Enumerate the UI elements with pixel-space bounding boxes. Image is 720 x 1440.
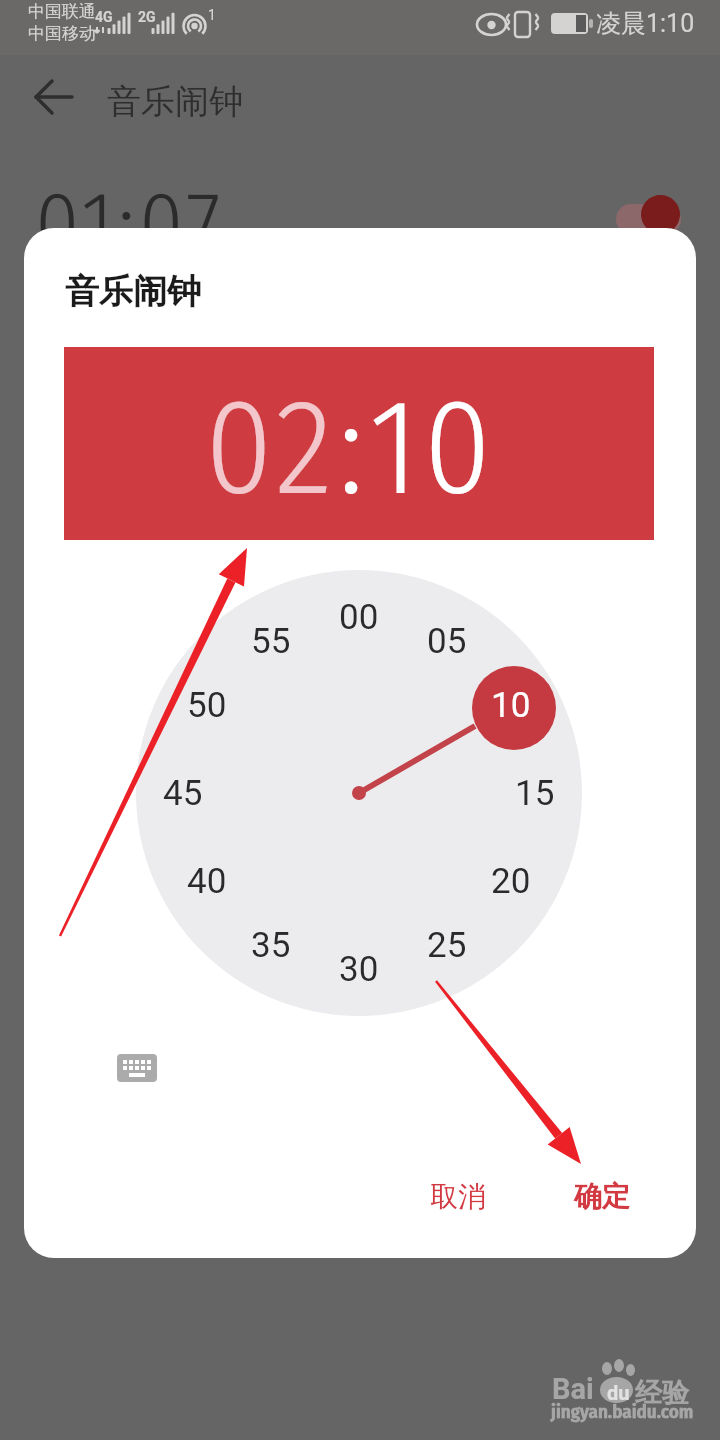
- staticText: 50: [187, 685, 227, 726]
- staticText: 25: [427, 925, 467, 966]
- staticText: jingyan.baidu.com: [551, 1400, 694, 1423]
- button[interactable]: 20: [471, 856, 551, 906]
- staticText: 01:07: [35, 171, 225, 277]
- staticText: 4G: [95, 9, 113, 25]
- button[interactable]: 55: [231, 616, 311, 666]
- staticText: 10: [369, 368, 496, 529]
- button[interactable]: 确定: [547, 1163, 657, 1229]
- button[interactable]: [616, 204, 681, 234]
- staticText: 00: [339, 597, 379, 638]
- staticText: 40: [187, 861, 227, 902]
- staticText: 45: [163, 773, 203, 814]
- staticText: 55: [251, 621, 291, 662]
- button[interactable]: 02: [64, 347, 654, 540]
- staticText: 确定: [574, 1179, 630, 1214]
- staticText: 中国移动: [28, 23, 96, 44]
- staticText: 20: [491, 861, 531, 902]
- button[interactable]: 取消: [408, 1163, 508, 1229]
- button[interactable]: 30: [319, 944, 399, 994]
- staticText: 凌晨1:10: [596, 8, 695, 39]
- button[interactable]: [36, 80, 74, 116]
- button[interactable]: 25: [407, 920, 487, 970]
- button[interactable]: 10: [471, 680, 551, 730]
- button[interactable]: 45: [143, 768, 223, 818]
- staticText: 音乐闹钟: [65, 270, 201, 313]
- staticText: 15: [515, 773, 555, 814]
- button[interactable]: 15: [495, 768, 575, 818]
- button[interactable]: 40: [167, 856, 247, 906]
- staticText: Bai: [552, 1372, 594, 1406]
- staticText: 取消: [430, 1179, 486, 1214]
- button[interactable]: 00: [319, 592, 399, 642]
- button[interactable]: 05: [407, 616, 487, 666]
- staticText: du: [607, 1381, 630, 1404]
- button[interactable]: 50: [167, 680, 247, 730]
- button[interactable]: 35: [231, 920, 311, 970]
- staticText: 中国联通: [28, 1, 96, 22]
- staticText: 10: [491, 685, 531, 726]
- staticText: 35: [251, 925, 291, 966]
- staticText: 02: [205, 368, 338, 529]
- staticText: 2G: [138, 9, 156, 25]
- staticText: 30: [339, 949, 379, 990]
- staticText: 05: [427, 621, 467, 662]
- staticText: 1: [208, 7, 216, 23]
- staticText: :: [338, 368, 369, 529]
- staticText: 音乐闹钟: [107, 80, 243, 123]
- staticText: 经验: [635, 1376, 689, 1410]
- button[interactable]: [136, 570, 582, 1016]
